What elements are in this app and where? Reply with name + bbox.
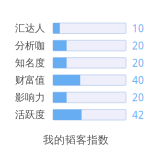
staticText: 20 <box>132 39 144 52</box>
staticText: 20 <box>132 56 144 70</box>
staticText: 分析咖 <box>15 39 45 52</box>
staticText: 活跃度 <box>15 108 45 121</box>
staticText: 财富值 <box>15 74 45 86</box>
staticText: 我的韬客指数 <box>43 133 109 147</box>
staticText: 42 <box>132 108 144 121</box>
staticText: 知名度 <box>15 57 45 69</box>
staticText: 40 <box>132 73 144 87</box>
staticText: 10 <box>132 21 144 35</box>
staticText: 影响力 <box>15 91 45 104</box>
staticText: 20 <box>132 91 144 104</box>
staticText: 汇达人 <box>15 22 45 35</box>
